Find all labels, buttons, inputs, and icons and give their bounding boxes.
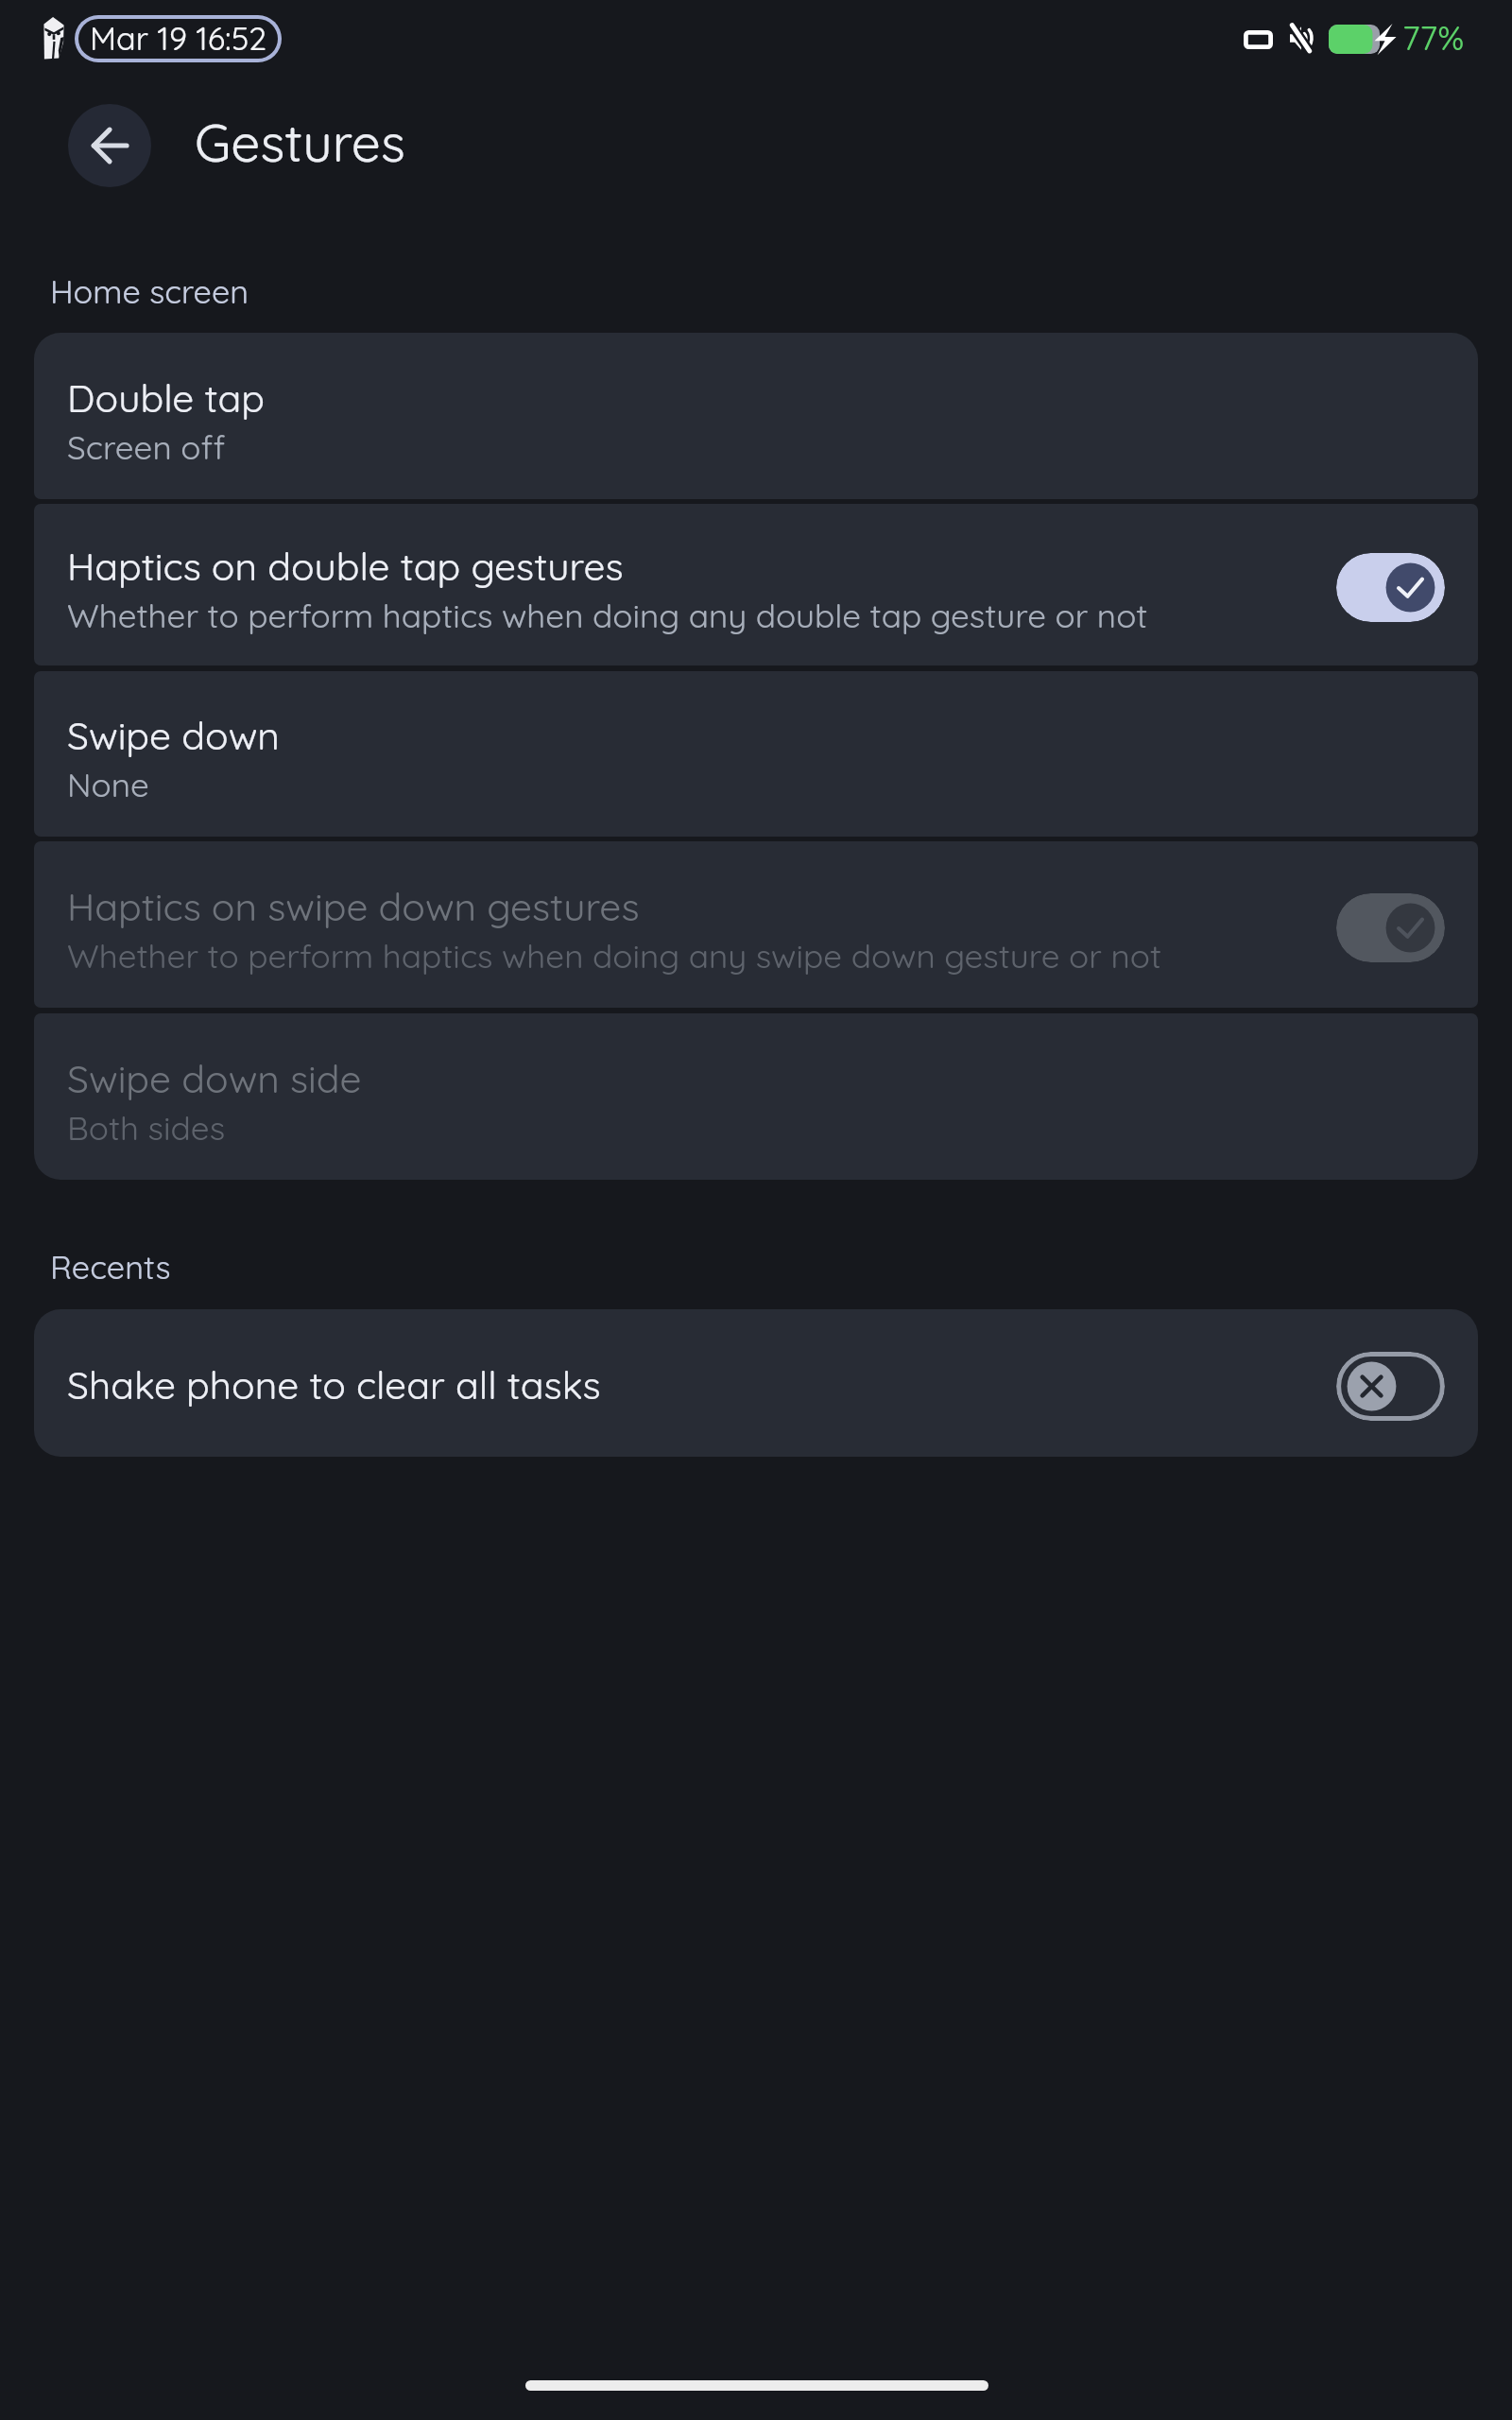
staticText: Recents — [50, 1247, 171, 1288]
staticText: Shake phone to clear all tasks — [67, 1360, 601, 1409]
staticText: Double tap — [67, 373, 265, 422]
staticText: Home screen — [50, 271, 249, 312]
staticText: Haptics on swipe down gestures — [67, 882, 640, 930]
staticText: Gestures — [195, 110, 405, 175]
staticText: Swipe down side — [67, 1054, 362, 1102]
staticText: 77% — [1402, 16, 1465, 59]
staticText: Whether to perform haptics when doing an… — [67, 595, 1148, 636]
button[interactable]: Haptics on swipe down gestures — [34, 841, 1478, 1008]
button[interactable]: Back — [68, 104, 151, 187]
staticText: Both sides — [67, 1107, 226, 1149]
button[interactable]: Toggle Shake phone to clear all tasks — [1336, 1352, 1445, 1421]
staticText: Haptics on double tap gestures — [67, 542, 624, 590]
button[interactable]: Toggle Haptics on double tap gestures — [1336, 553, 1445, 622]
staticText: Mar 19 16:52 — [90, 19, 267, 58]
staticText: Swipe down — [67, 711, 280, 759]
button[interactable]: Double tap — [34, 333, 1478, 499]
staticText: Screen off — [67, 426, 226, 468]
button[interactable]: Toggle Haptics on swipe down gestures — [1336, 893, 1445, 962]
button[interactable]: Swipe down — [34, 671, 1478, 837]
button[interactable]: Shake phone to clear all tasks — [34, 1309, 1478, 1457]
staticText: Whether to perform haptics when doing an… — [67, 935, 1161, 977]
button[interactable]: Swipe down side — [34, 1013, 1478, 1180]
button[interactable]: Haptics on double tap gestures — [34, 504, 1478, 665]
staticText: None — [67, 764, 149, 805]
